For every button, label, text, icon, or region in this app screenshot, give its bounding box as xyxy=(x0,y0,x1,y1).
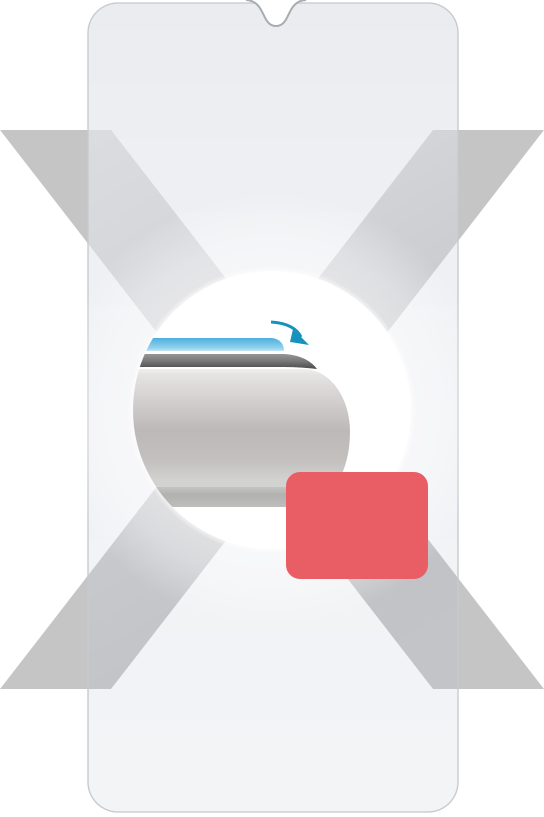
button[interactable]: Screen protector product illustration xyxy=(0,0,544,817)
